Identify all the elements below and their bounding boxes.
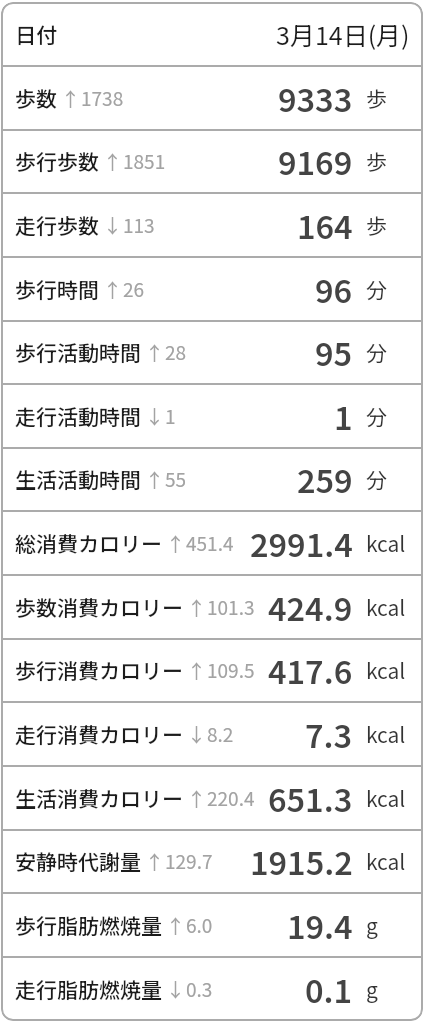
staticText: 113 (123, 211, 155, 239)
staticText: 歩行歩数 (15, 146, 99, 176)
staticText: ↓ (145, 402, 165, 430)
staticText: kcal (366, 655, 406, 685)
button[interactable]: 歩行活動時間 (1, 320, 423, 384)
staticText: 走行活動時間 (15, 401, 141, 431)
staticText: 109.5 (207, 656, 255, 684)
staticText: 安静時代謝量 (15, 846, 141, 876)
button[interactable]: 走行消費カロリー (1, 702, 423, 766)
button[interactable]: 歩行歩数 (1, 129, 423, 193)
staticText: 3月14日(月) (276, 16, 410, 52)
staticText: 歩数 (15, 83, 57, 113)
staticText: ↑ (103, 275, 123, 303)
staticText: 日付 (15, 19, 57, 49)
staticText: ↑ (103, 147, 123, 175)
staticText: 分 (366, 337, 387, 367)
staticText: kcal (366, 592, 406, 622)
staticText: 0.1 (305, 966, 353, 1012)
staticText: 96 (315, 266, 353, 312)
staticText: g (366, 974, 378, 1004)
staticText: 55 (165, 465, 187, 493)
staticText: 6.0 (186, 911, 213, 939)
button[interactable]: 走行脂肪燃焼量 (1, 957, 423, 1021)
staticText: ↑ (166, 911, 186, 939)
button[interactable]: 生活消費カロリー (1, 766, 423, 830)
button[interactable]: 日付 (1, 2, 423, 66)
button[interactable]: 歩数消費カロリー (1, 575, 423, 639)
staticText: g (366, 910, 378, 940)
button[interactable]: 歩行消費カロリー (1, 638, 423, 702)
staticText: ↑ (145, 847, 165, 875)
staticText: 歩行消費カロリー (15, 655, 183, 685)
staticText: 2991.4 (250, 520, 353, 566)
staticText: ↑ (61, 84, 81, 112)
button[interactable]: 総消費カロリー (1, 511, 423, 575)
staticText: 歩 (366, 210, 387, 240)
staticText: 生活活動時間 (15, 464, 141, 494)
staticText: 220.4 (207, 784, 255, 812)
staticText: 19.4 (287, 902, 353, 948)
staticText: kcal (366, 783, 406, 813)
staticText: 走行消費カロリー (15, 719, 183, 749)
staticText: ↓ (166, 975, 186, 1003)
staticText: 0.3 (186, 975, 213, 1003)
staticText: 1851 (123, 147, 166, 175)
staticText: ↑ (166, 529, 186, 557)
staticText: ↑ (187, 784, 207, 812)
staticText: 9169 (278, 138, 353, 184)
staticText: ↑ (187, 656, 207, 684)
staticText: 分 (366, 464, 387, 494)
staticText: 分 (366, 401, 387, 431)
button[interactable]: 安静時代謝量 (1, 829, 423, 893)
staticText: 生活消費カロリー (15, 783, 183, 813)
staticText: 歩 (366, 83, 387, 113)
button[interactable]: 歩行脂肪燃焼量 (1, 893, 423, 957)
staticText: kcal (366, 528, 406, 558)
staticText: 分 (366, 274, 387, 304)
staticText: 歩行時間 (15, 274, 99, 304)
staticText: 走行脂肪燃焼量 (15, 974, 162, 1004)
staticText: ↑ (145, 338, 165, 366)
button[interactable]: 走行歩数 (1, 193, 423, 257)
staticText: ↓ (187, 720, 207, 748)
staticText: kcal (366, 719, 406, 749)
staticText: 28 (165, 338, 187, 366)
button[interactable]: 歩数 (1, 66, 423, 130)
button[interactable]: 走行活動時間 (1, 384, 423, 448)
staticText: 101.3 (207, 593, 255, 621)
staticText: 26 (123, 275, 145, 303)
staticText: 424.9 (268, 584, 353, 630)
staticText: 651.3 (268, 775, 353, 821)
staticText: 1 (165, 402, 176, 430)
staticText: 走行歩数 (15, 210, 99, 240)
staticText: 歩数消費カロリー (15, 592, 183, 622)
staticText: 歩行脂肪燃焼量 (15, 910, 162, 940)
staticText: 95 (315, 329, 353, 375)
staticText: 1915.2 (250, 838, 353, 884)
staticText: 1738 (81, 84, 124, 112)
staticText: kcal (366, 846, 406, 876)
staticText: 総消費カロリー (15, 528, 162, 558)
staticText: 8.2 (207, 720, 234, 748)
staticText: 歩行活動時間 (15, 337, 141, 367)
staticText: ↓ (103, 211, 123, 239)
staticText: 451.4 (186, 529, 234, 557)
staticText: ↑ (145, 465, 165, 493)
staticText: 7.3 (305, 711, 353, 757)
staticText: ↑ (187, 593, 207, 621)
staticText: 129.7 (165, 847, 213, 875)
button[interactable]: 歩行時間 (1, 257, 423, 321)
button[interactable]: 生活活動時間 (1, 447, 423, 511)
staticText: 259 (297, 456, 353, 502)
staticText: 164 (297, 202, 353, 248)
staticText: 9333 (278, 75, 353, 121)
staticText: 417.6 (268, 647, 353, 693)
staticText: 1 (334, 393, 353, 439)
staticText: 歩 (366, 146, 387, 176)
